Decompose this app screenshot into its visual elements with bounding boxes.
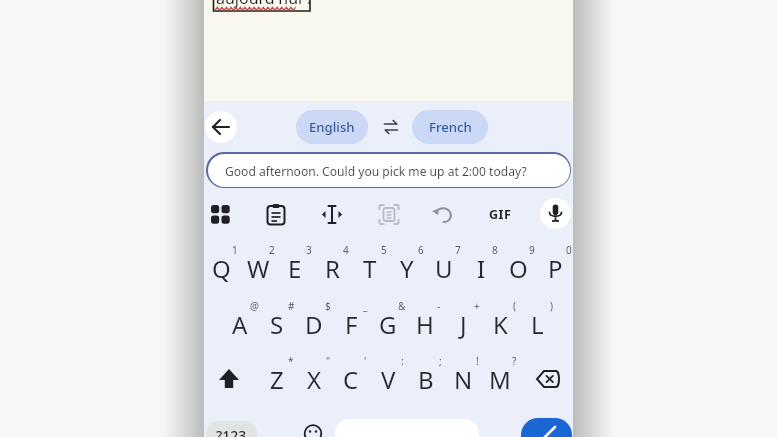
staticText: 8 [492,243,498,257]
staticText: ( [513,299,516,313]
staticText: English [309,118,355,136]
button[interactable] [314,250,350,286]
button[interactable] [426,250,462,286]
staticText: Q [212,252,231,285]
staticText: aujourd'hui ? [216,0,314,9]
staticText: H [416,308,434,341]
staticText: ?123 [216,426,247,437]
staticText: ) [550,299,553,313]
button[interactable] [204,250,239,286]
staticText: ? [512,354,517,368]
staticText: V [381,363,396,396]
staticText: 4 [343,243,349,257]
button[interactable] [538,197,572,231]
button[interactable] [296,305,332,341]
staticText: 9 [529,243,535,257]
staticText: Good afternoon. Could you pick me up at … [225,163,527,179]
staticText: * [288,354,294,368]
staticText: Y [400,252,414,285]
button[interactable] [333,361,369,397]
button[interactable] [370,305,406,341]
button[interactable] [259,197,293,231]
button[interactable] [445,305,481,341]
staticText: D [305,308,323,341]
button[interactable] [240,250,276,286]
staticText: @ [250,299,259,313]
staticText: J [460,308,467,341]
staticText: ' [364,354,367,368]
staticText: K [493,308,508,341]
staticText: GIF [489,206,512,223]
staticText: G [379,308,397,341]
button[interactable]: English [296,110,368,144]
button[interactable]: French [412,110,488,144]
staticText: F [345,308,358,341]
staticText: Z [270,363,284,396]
staticText: L [531,308,544,341]
staticText: " [326,354,331,368]
staticText: 2 [269,243,275,257]
staticText: X [307,363,322,396]
button[interactable] [463,250,499,286]
staticText: 6 [418,243,424,257]
button[interactable] [204,197,237,231]
button[interactable] [333,305,369,341]
staticText: # [288,299,295,313]
button[interactable] [352,250,388,286]
button[interactable] [521,418,572,437]
button[interactable]: Good afternoon. Could you pick me up at … [206,152,571,188]
button[interactable] [259,361,295,397]
staticText: ; [439,354,442,368]
button[interactable] [335,419,479,437]
staticText: O [509,252,528,285]
staticText: C [343,363,359,396]
button[interactable] [299,420,327,437]
staticText: P [548,252,563,285]
staticText: A [232,308,248,341]
button[interactable] [370,361,406,397]
button[interactable] [315,197,349,231]
staticText: E [288,252,302,285]
staticText: ! [476,354,479,368]
staticText: S [270,308,284,341]
button[interactable] [426,197,460,231]
staticText: + [474,299,480,313]
button[interactable] [445,361,481,397]
button[interactable] [530,361,566,397]
staticText: 3 [306,243,312,257]
staticText: R [325,252,340,285]
button[interactable] [296,361,332,397]
button[interactable] [408,361,444,397]
button[interactable] [519,305,555,341]
staticText: W [247,252,270,285]
button[interactable] [372,197,406,231]
button[interactable]: ?123 [206,421,257,437]
staticText: _ [363,299,368,313]
button[interactable] [500,250,536,286]
button[interactable] [389,250,425,286]
staticText: I [477,252,486,285]
staticText: 1 [232,243,238,257]
button[interactable] [537,250,573,286]
staticText: T [363,252,377,285]
staticText: B [418,363,434,396]
staticText: : [401,354,404,368]
button[interactable] [482,361,518,397]
staticText: M [489,363,511,396]
staticText: & [398,299,406,313]
staticText: $ [325,299,331,313]
button[interactable] [277,250,313,286]
staticText: 5 [381,243,387,257]
button[interactable] [259,305,295,341]
staticText: U [435,252,453,285]
button[interactable] [483,197,517,231]
staticText: N [454,363,473,396]
button[interactable] [407,305,443,341]
button[interactable] [482,305,518,341]
staticText: - [437,299,441,313]
button[interactable] [205,111,237,143]
button[interactable] [211,361,247,397]
staticText: 7 [455,243,461,257]
staticText: 0 [566,243,572,257]
button[interactable] [222,305,258,341]
